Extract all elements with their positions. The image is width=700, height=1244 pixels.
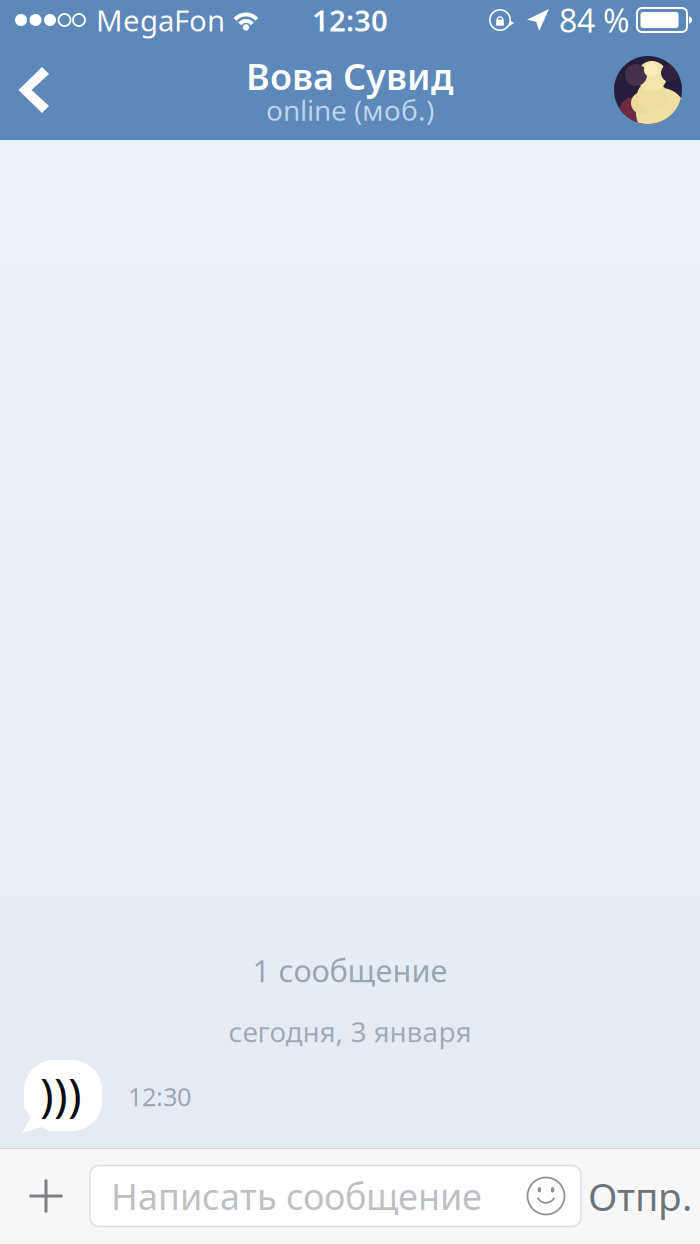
- button[interactable]: Back: [0, 40, 70, 140]
- staticText: online (моб.): [266, 91, 434, 129]
- staticText: Вова Сувид: [246, 52, 454, 100]
- staticText: MegaFon: [96, 0, 225, 39]
- staticText: 12:30: [128, 1080, 191, 1113]
- staticText: 12:30: [312, 0, 388, 39]
- button[interactable]: Написать сообщение: [90, 1165, 581, 1226]
- button[interactable]: Отпр.: [581, 1148, 700, 1244]
- staticText: 84 %: [559, 0, 630, 41]
- staticText: Написать сообщение: [111, 1172, 482, 1220]
- staticText: сегодня, 3 января: [228, 1013, 471, 1050]
- button[interactable]: Profile: [614, 56, 700, 124]
- button[interactable]: Attach: [0, 1148, 90, 1244]
- staticText: ))): [40, 1064, 82, 1125]
- staticText: Отпр.: [588, 1170, 692, 1222]
- staticText: 1 сообщение: [252, 950, 447, 991]
